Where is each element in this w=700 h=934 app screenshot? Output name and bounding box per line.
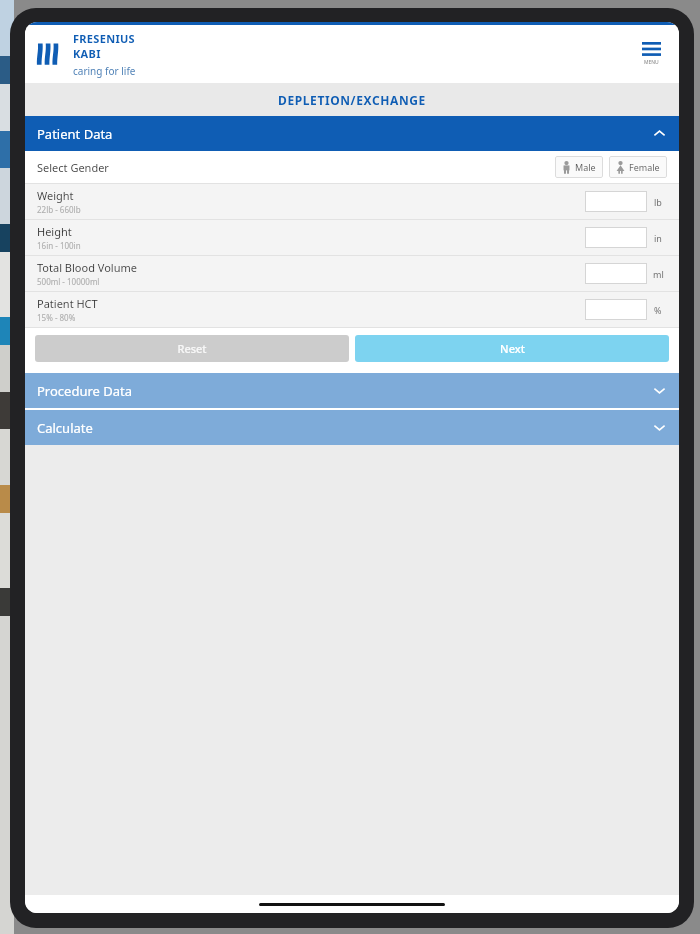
button[interactable]: Menu <box>636 36 667 72</box>
staticText: ml <box>653 268 664 280</box>
staticText: 16in - 100in <box>37 240 81 251</box>
staticText: KABI <box>73 46 101 61</box>
staticText: DEPLETION/EXCHANGE <box>278 92 426 108</box>
staticText: Patient HCT <box>37 296 98 311</box>
staticText: Total Blood Volume <box>37 260 137 275</box>
staticText: Weight <box>37 188 74 203</box>
staticText: 22lb - 660lb <box>37 204 81 215</box>
staticText: 500ml - 10000ml <box>37 276 100 287</box>
button[interactable]: Calculate <box>25 410 679 445</box>
staticText: caring for life <box>73 64 136 78</box>
button[interactable]: Reset <box>35 335 349 362</box>
button[interactable]: Weight input <box>585 191 647 212</box>
staticText: Female <box>629 161 660 173</box>
button[interactable]: Female <box>609 156 667 178</box>
button[interactable]: Male <box>555 156 603 178</box>
staticText: 15% - 80% <box>37 312 76 323</box>
button[interactable]: Total Blood Volume input <box>585 263 647 284</box>
staticText: Height <box>37 224 72 239</box>
button[interactable]: Patient HCT input <box>585 299 647 320</box>
staticText: Patient Data <box>37 125 113 143</box>
staticText: Male <box>575 161 596 173</box>
staticText: FRESENIUS <box>73 31 135 46</box>
staticText: lb <box>654 196 662 208</box>
button[interactable]: Next <box>355 335 669 362</box>
staticText: Reset <box>177 341 207 356</box>
button[interactable]: Patient Data <box>25 116 679 151</box>
staticText: in <box>654 232 662 244</box>
button[interactable]: Height input <box>585 227 647 248</box>
staticText: Procedure Data <box>37 382 133 400</box>
staticText: MENU <box>644 59 659 66</box>
staticText: Select Gender <box>37 160 109 175</box>
button[interactable]: Procedure Data <box>25 373 679 408</box>
staticText: Next <box>500 341 525 356</box>
staticText: Calculate <box>37 419 93 437</box>
staticText: % <box>654 304 662 316</box>
